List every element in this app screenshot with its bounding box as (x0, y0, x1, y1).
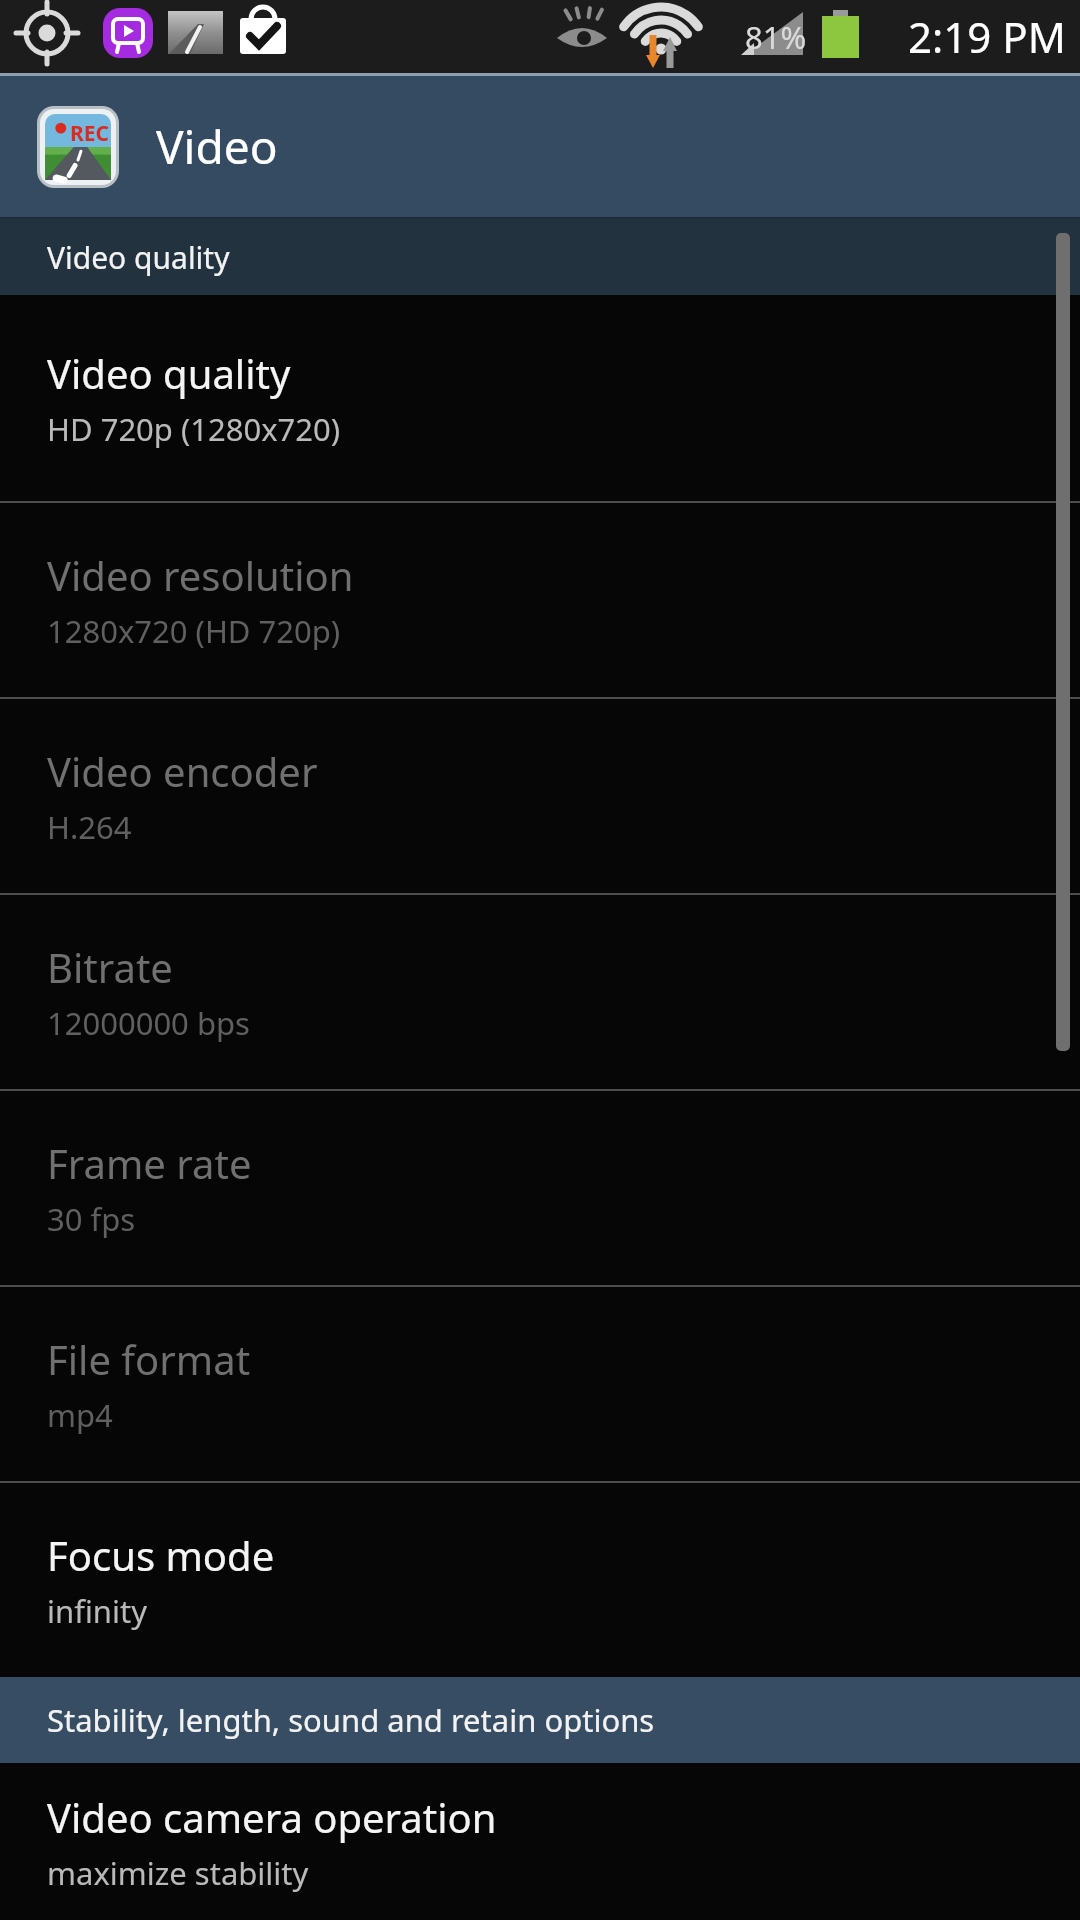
button[interactable]: Video camera operation (0, 1763, 1080, 1920)
staticText: Stability, length, sound and retain opti… (47, 1699, 655, 1741)
button[interactable]: Bitrate (0, 895, 1080, 1089)
staticText: 1280x720 (HD 720p) (47, 610, 341, 652)
button[interactable]: Frame rate (0, 1091, 1080, 1285)
staticText: 81% (745, 16, 807, 58)
staticText: H.264 (47, 806, 132, 848)
staticText: Video quality (47, 237, 230, 278)
staticText: mp4 (47, 1394, 113, 1436)
staticText: Video quality (47, 346, 291, 400)
staticText: maximize stability (47, 1852, 309, 1894)
staticText: Bitrate (47, 940, 173, 994)
button[interactable]: Video resolution (0, 503, 1080, 697)
button[interactable]: Focus mode (0, 1483, 1080, 1677)
staticText: Video camera operation (47, 1790, 497, 1844)
button[interactable]: File format (0, 1287, 1080, 1481)
staticText: File format (47, 1332, 251, 1386)
staticText: Frame rate (47, 1136, 252, 1190)
button[interactable]: Video app icon (0, 76, 1080, 217)
staticText: REC (70, 119, 110, 148)
staticText: infinity (47, 1590, 147, 1632)
button[interactable]: Video quality (0, 295, 1080, 501)
staticText: 2:19 PM (908, 8, 1066, 65)
staticText: 30 fps (47, 1198, 136, 1240)
button[interactable]: Video quality (0, 219, 1080, 295)
other: Video app icon (36, 105, 120, 189)
staticText: Video resolution (47, 548, 354, 602)
button[interactable]: Video encoder (0, 699, 1080, 893)
staticText: HD 720p (1280x720) (47, 408, 341, 450)
staticText: Focus mode (47, 1528, 275, 1582)
button[interactable]: Stability, length, sound and retain opti… (0, 1677, 1080, 1763)
staticText: 12000000 bps (47, 1002, 250, 1044)
staticText: Video (156, 115, 278, 178)
staticText: Video encoder (47, 744, 318, 798)
